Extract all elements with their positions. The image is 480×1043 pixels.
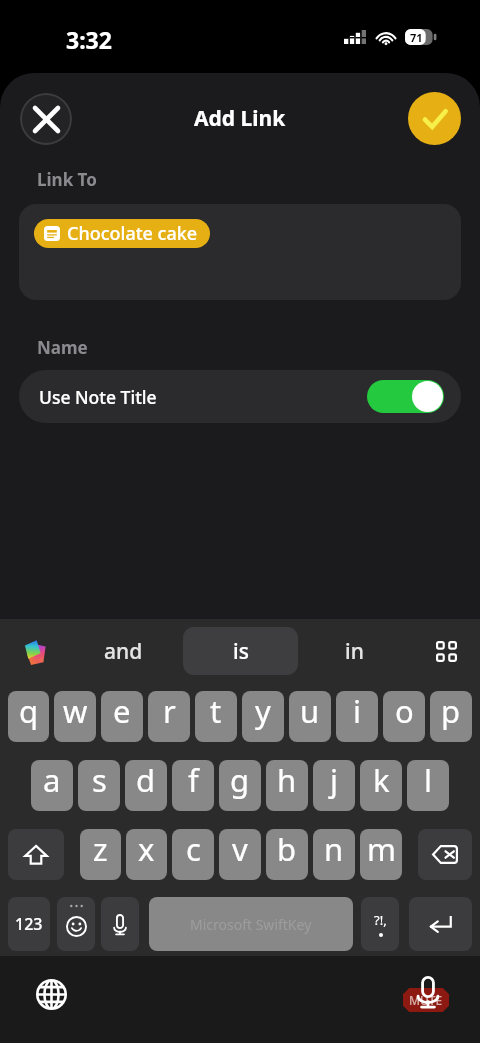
staticText: o bbox=[395, 691, 414, 732]
staticText: f bbox=[188, 760, 199, 801]
button[interactable]: w bbox=[54, 691, 96, 742]
staticText: w bbox=[63, 691, 88, 732]
button[interactable]: f bbox=[172, 760, 214, 811]
button[interactable]: z bbox=[80, 829, 121, 880]
button[interactable]: t bbox=[195, 691, 237, 742]
button[interactable]: Close bbox=[20, 93, 72, 145]
button[interactable]: Chocolate cake bbox=[34, 219, 210, 248]
button[interactable]: m bbox=[360, 829, 402, 880]
staticText: e bbox=[113, 691, 131, 732]
staticText: Name bbox=[37, 336, 88, 359]
staticText: j bbox=[330, 760, 338, 801]
button[interactable]: Shift bbox=[8, 829, 64, 880]
button[interactable]: Emoji bbox=[57, 897, 95, 951]
staticText: y bbox=[255, 691, 271, 732]
button[interactable]: and bbox=[83, 623, 163, 679]
staticText: u bbox=[300, 691, 320, 732]
button[interactable]: i bbox=[336, 691, 378, 742]
button[interactable]: Mute bbox=[400, 970, 452, 1012]
button[interactable]: Punctuation bbox=[361, 897, 399, 951]
staticText: x bbox=[138, 829, 155, 870]
button[interactable]: n bbox=[313, 829, 355, 880]
button[interactable]: p bbox=[430, 691, 472, 742]
staticText: z bbox=[93, 829, 108, 870]
button[interactable]: Enter bbox=[409, 897, 472, 951]
staticText: ?!, bbox=[374, 911, 387, 929]
staticText: d bbox=[136, 760, 156, 801]
button[interactable]: More options bbox=[428, 633, 464, 669]
staticText: r bbox=[163, 691, 176, 732]
button[interactable]: v bbox=[219, 829, 261, 880]
button[interactable]: Change language bbox=[33, 976, 69, 1012]
button[interactable]: d bbox=[125, 760, 167, 811]
button[interactable]: q bbox=[8, 691, 49, 742]
button[interactable]: u bbox=[289, 691, 331, 742]
button[interactable]: Microsoft SwiftKey bbox=[149, 897, 353, 951]
button[interactable]: r bbox=[148, 691, 190, 742]
staticText: in bbox=[345, 637, 364, 666]
button[interactable]: Copilot bbox=[17, 633, 53, 669]
staticText: Use Note Title bbox=[39, 385, 157, 409]
staticText: b bbox=[277, 829, 297, 870]
staticText: and bbox=[104, 637, 143, 666]
button[interactable]: l bbox=[407, 760, 449, 811]
staticText: k bbox=[373, 760, 390, 801]
button[interactable]: Backspace bbox=[418, 829, 472, 880]
staticText: a bbox=[43, 760, 61, 801]
button[interactable]: j bbox=[313, 760, 355, 811]
button[interactable]: h bbox=[266, 760, 308, 811]
staticText: v bbox=[232, 829, 248, 870]
button[interactable]: Confirm bbox=[408, 92, 461, 145]
staticText: Microsoft SwiftKey bbox=[190, 915, 312, 934]
staticText: q bbox=[19, 691, 39, 732]
button[interactable]: g bbox=[219, 760, 261, 811]
staticText: m bbox=[367, 829, 396, 870]
staticText: Add Link bbox=[194, 104, 286, 133]
button[interactable]: b bbox=[266, 829, 308, 880]
button[interactable]: e bbox=[101, 691, 143, 742]
staticText: 3:32 bbox=[66, 24, 112, 55]
button[interactable]: is bbox=[183, 627, 298, 675]
staticText: h bbox=[277, 760, 297, 801]
staticText: 123 bbox=[15, 913, 43, 935]
staticText: c bbox=[186, 829, 201, 870]
button[interactable]: k bbox=[360, 760, 402, 811]
staticText: g bbox=[230, 760, 250, 801]
button[interactable]: in bbox=[314, 623, 394, 679]
staticText: l bbox=[424, 760, 432, 801]
staticText: s bbox=[92, 760, 107, 801]
button[interactable]: c bbox=[172, 829, 214, 880]
button[interactable]: s bbox=[78, 760, 120, 811]
button[interactable]: o bbox=[383, 691, 425, 742]
button[interactable]: 123 bbox=[8, 897, 50, 951]
staticText: MUTE bbox=[409, 992, 443, 1008]
staticText: Chocolate cake bbox=[67, 221, 198, 246]
staticText: 71 bbox=[410, 30, 423, 45]
button[interactable]: y bbox=[242, 691, 284, 742]
staticText: Link To bbox=[37, 168, 97, 191]
staticText: p bbox=[441, 691, 461, 732]
button[interactable]: Voice input bbox=[101, 897, 139, 951]
staticText: n bbox=[324, 829, 344, 870]
staticText: i bbox=[353, 691, 361, 732]
staticText: is bbox=[233, 637, 249, 666]
button[interactable]: x bbox=[126, 829, 167, 880]
button[interactable]: Use Note Title bbox=[19, 370, 461, 423]
staticText: t bbox=[210, 691, 222, 732]
button[interactable]: a bbox=[31, 760, 73, 811]
